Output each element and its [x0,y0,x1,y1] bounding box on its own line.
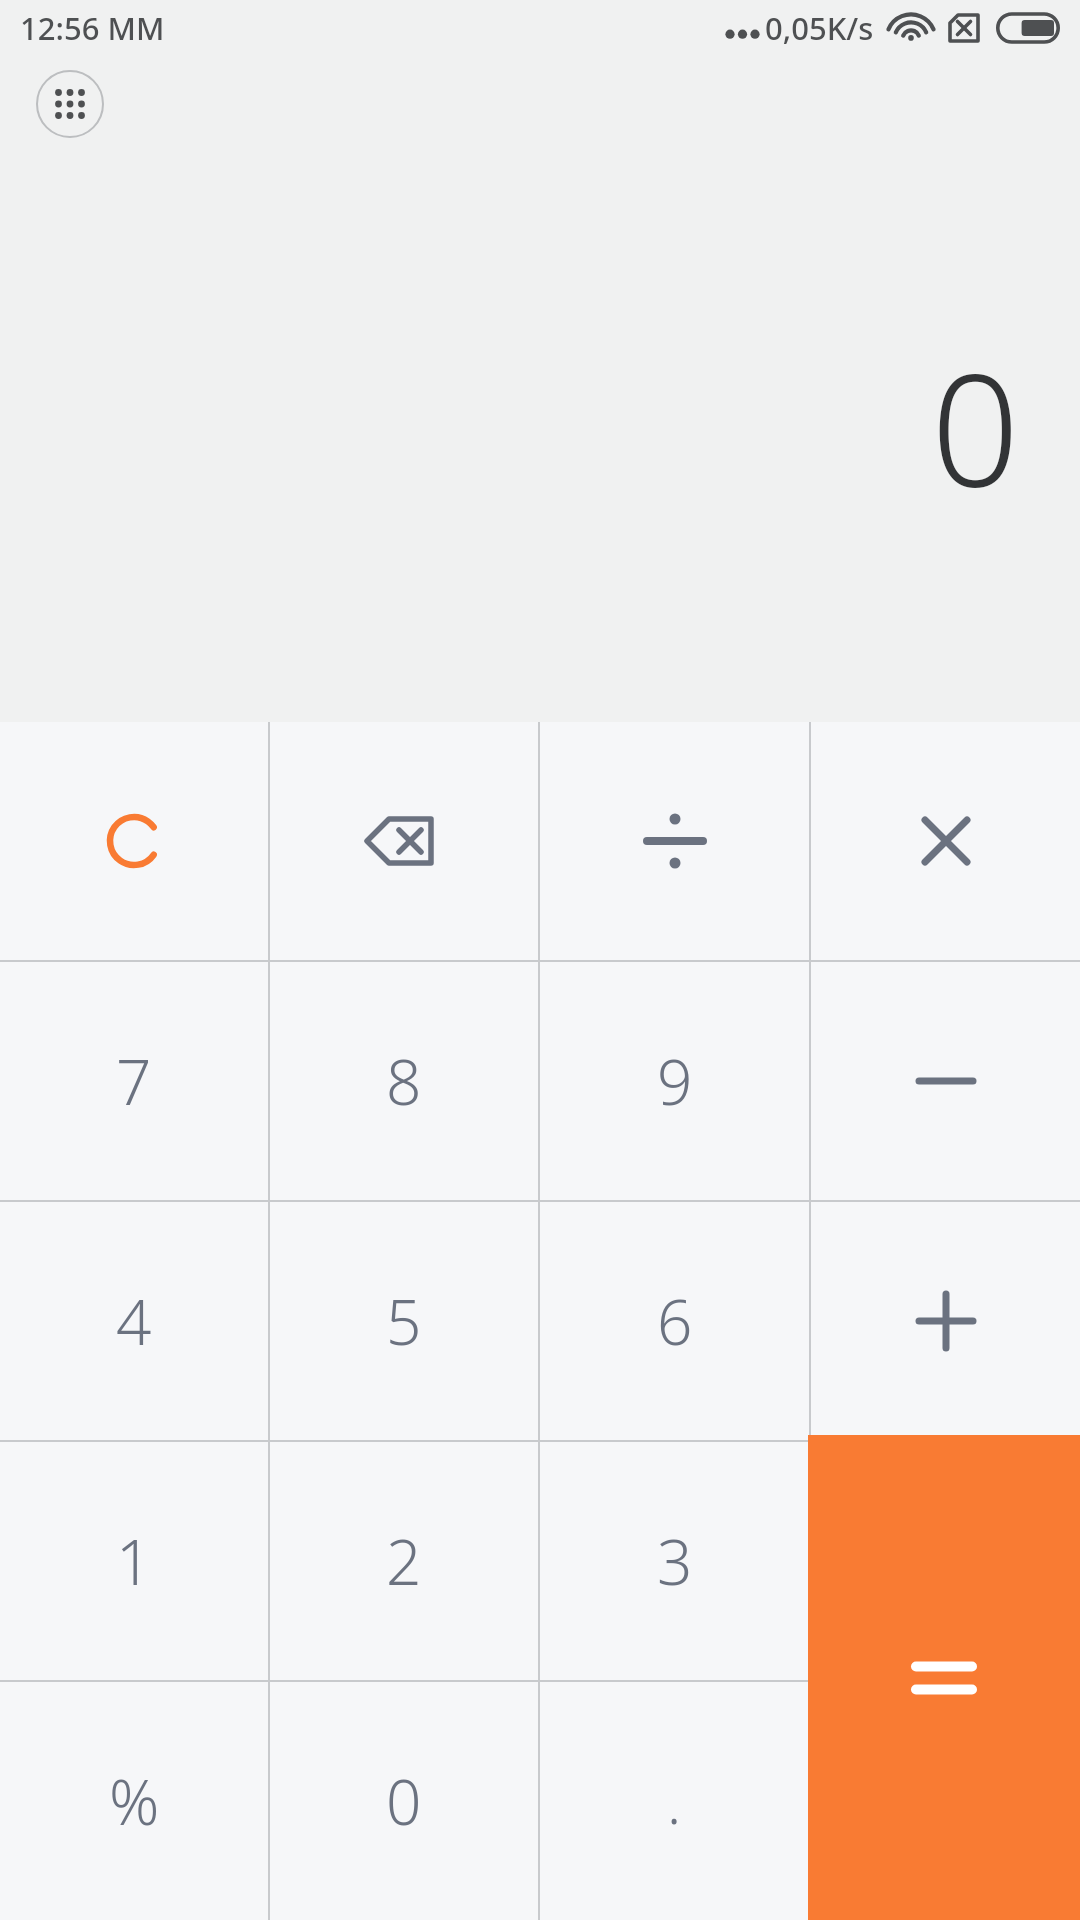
staticText: 6 [657,1279,693,1363]
button[interactable]: 4 [0,1202,268,1440]
button[interactable]: Clear [0,722,268,960]
button[interactable]: . [540,1682,809,1920]
button[interactable]: 7 [0,962,268,1200]
staticText: 9 [657,1039,693,1123]
staticText: 12:56 MM [20,7,165,49]
button[interactable]: 3 [540,1442,809,1680]
staticText: 0 [386,1759,422,1843]
button[interactable]: 8 [270,962,538,1200]
staticText: 0 [931,320,1020,531]
staticText: 0,05K/s [765,7,874,49]
staticText: 4 [116,1279,152,1363]
staticText: 5 [386,1279,422,1363]
button[interactable]: Multiply [811,722,1080,960]
button[interactable]: 1 [0,1442,268,1680]
staticText: 1 [116,1519,152,1603]
button[interactable]: 9 [540,962,809,1200]
button[interactable]: 5 [270,1202,538,1440]
staticText: 3 [657,1519,693,1603]
button[interactable]: App drawer [36,70,104,138]
button[interactable]: 6 [540,1202,809,1440]
button[interactable]: Plus [811,1202,1080,1440]
button[interactable]: % [0,1682,268,1920]
button[interactable]: Divide [540,722,809,960]
staticText: 2 [386,1519,422,1603]
staticText: 8 [386,1039,422,1123]
button[interactable]: 2 [270,1442,538,1680]
staticText: % [109,1759,160,1843]
staticText: . [667,1762,682,1841]
button[interactable]: Backspace [270,722,538,960]
button[interactable]: Equals [808,1435,1080,1920]
staticText: 7 [116,1039,152,1123]
button[interactable]: 0 [270,1682,538,1920]
button[interactable]: Minus [811,962,1080,1200]
